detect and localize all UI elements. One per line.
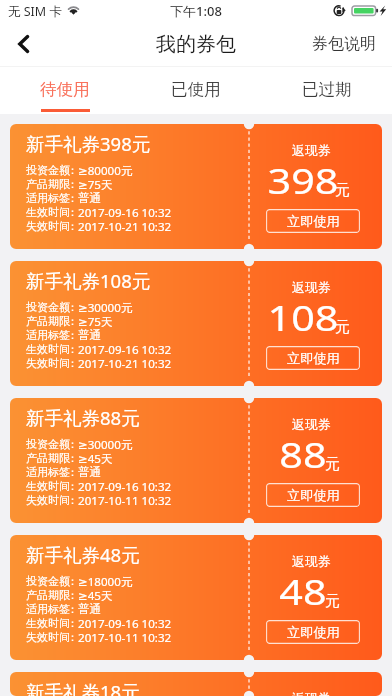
staticText: 失效时间 (26, 493, 70, 507)
staticText: 产品期限 (26, 177, 70, 191)
staticText: 返现券 (245, 279, 378, 295)
staticText: ： (67, 328, 78, 342)
button[interactable]: 待使用 (0, 67, 130, 114)
staticText: ： (67, 163, 78, 177)
button[interactable]: 立即使用 (266, 346, 360, 370)
button[interactable]: 券包说明 (298, 22, 392, 66)
staticText: 适用标签 (26, 465, 70, 479)
staticText: ： (67, 437, 78, 451)
staticText: 普通 (78, 328, 102, 342)
staticText: 48 (279, 568, 328, 616)
staticText: 产品期限 (26, 451, 70, 465)
staticText: 普通 (78, 602, 102, 616)
staticText: 立即使用 (287, 624, 340, 641)
staticText: 生效时间 (26, 616, 70, 630)
staticText: 新手礼券398元 (26, 131, 151, 156)
staticText: 适用标签 (26, 328, 70, 342)
staticText: 失效时间 (26, 356, 70, 370)
staticText: 我的券包 (156, 32, 236, 57)
staticText: 适用标签 (26, 602, 70, 616)
staticText: 下午1:08 (170, 2, 222, 20)
staticText: 无 SIM 卡 (8, 3, 62, 20)
staticText: ： (67, 479, 78, 493)
button[interactable]: 新手礼券88元 (10, 398, 382, 523)
button[interactable]: 立即使用 (266, 620, 360, 644)
staticText: ： (67, 602, 78, 616)
staticText: ： (67, 493, 78, 507)
button[interactable]: 已过期 (261, 67, 392, 114)
staticText: ： (67, 177, 78, 191)
staticText: 返现券 (245, 690, 378, 696)
staticText: 产品期限 (26, 588, 70, 602)
staticText: 立即使用 (287, 487, 340, 504)
staticText: 券包说明 (312, 34, 376, 54)
staticText: 元 (325, 455, 340, 474)
staticText: ： (67, 219, 78, 233)
button[interactable]: 新手礼券108元 (10, 261, 382, 386)
staticText: ： (67, 574, 78, 588)
staticText: 2017-09-16 10:32 (78, 205, 172, 219)
staticText: 2017-10-11 10:32 (78, 630, 172, 644)
staticText: 2017-09-16 10:32 (78, 616, 172, 630)
staticText: 新手礼券48元 (26, 542, 140, 567)
staticText: ： (67, 630, 78, 644)
staticText: ≥75天 (78, 314, 113, 328)
staticText: 88 (279, 431, 328, 479)
staticText: ： (67, 314, 78, 328)
staticText: ≥45天 (78, 451, 113, 465)
staticText: 2017-10-21 10:32 (78, 219, 172, 233)
staticText: ≥45天 (78, 588, 113, 602)
staticText: 新手礼券108元 (26, 268, 151, 293)
staticText: ： (67, 465, 78, 479)
staticText: 生效时间 (26, 342, 70, 356)
staticText: ≥30000元 (78, 300, 133, 314)
staticText: 投资金额 (26, 163, 70, 177)
staticText: 生效时间 (26, 205, 70, 219)
staticText: ： (67, 356, 78, 370)
staticText: ≥75天 (78, 177, 113, 191)
staticText: ≥80000元 (78, 163, 133, 177)
staticText: ： (67, 451, 78, 465)
staticText: ≥18000元 (78, 574, 133, 588)
staticText: 普通 (78, 465, 102, 479)
staticText: 元 (335, 181, 350, 200)
staticText: 返现券 (245, 416, 378, 432)
staticText: 投资金额 (26, 300, 70, 314)
staticText: 待使用 (40, 79, 90, 100)
button[interactable]: 新手礼券398元 (10, 124, 382, 249)
staticText: ≥30000元 (78, 437, 133, 451)
staticText: 2017-10-11 10:32 (78, 493, 172, 507)
button[interactable]: 已使用 (130, 67, 261, 114)
staticText: 适用标签 (26, 191, 70, 205)
staticText: 已过期 (302, 79, 352, 100)
staticText: 返现券 (245, 142, 378, 158)
staticText: ： (67, 191, 78, 205)
staticText: 失效时间 (26, 219, 70, 233)
staticText: 立即使用 (287, 350, 340, 367)
staticText: 2017-10-21 10:32 (78, 356, 172, 370)
staticText: ： (67, 205, 78, 219)
button[interactable]: Back (0, 22, 46, 66)
staticText: 2017-09-16 10:32 (78, 342, 172, 356)
staticText: ： (67, 616, 78, 630)
staticText: 2017-09-16 10:32 (78, 479, 172, 493)
staticText: ： (67, 342, 78, 356)
staticText: 失效时间 (26, 630, 70, 644)
staticText: ： (67, 300, 78, 314)
staticText: 生效时间 (26, 479, 70, 493)
button[interactable]: 立即使用 (266, 209, 360, 233)
staticText: 新手礼券18元 (26, 679, 140, 696)
button[interactable]: 立即使用 (266, 483, 360, 507)
staticText: 普通 (78, 191, 102, 205)
staticText: 398 (267, 157, 339, 205)
staticText: 元 (335, 318, 350, 337)
staticText: 返现券 (245, 553, 378, 569)
staticText: 元 (325, 592, 340, 611)
button[interactable]: 新手礼券48元 (10, 535, 382, 660)
staticText: 产品期限 (26, 314, 70, 328)
staticText: 新手礼券88元 (26, 405, 140, 430)
staticText: 投资金额 (26, 574, 70, 588)
staticText: 投资金额 (26, 437, 70, 451)
staticText: ： (67, 588, 78, 602)
button[interactable]: 新手礼券18元 (10, 672, 382, 696)
